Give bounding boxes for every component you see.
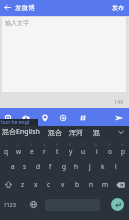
staticText: 混合English: [2, 127, 40, 137]
button[interactable]: More candidates: [115, 126, 127, 138]
staticText: 6: [69, 142, 72, 147]
staticText: 8: [95, 142, 98, 147]
staticText: 7: [82, 142, 85, 147]
staticText: m: [102, 180, 109, 189]
button[interactable]: b: [70, 176, 84, 193]
button[interactable]: 8: [90, 140, 103, 157]
staticText: g: [62, 162, 66, 171]
staticText: a: [11, 162, 15, 171]
button[interactable]: 5: [51, 140, 64, 157]
button[interactable]: 0: [116, 140, 129, 157]
button[interactable]: Backspace: [112, 176, 129, 193]
button[interactable]: 浑河: [68, 128, 84, 137]
staticText: u: [81, 147, 86, 156]
staticText: d: [36, 162, 40, 171]
staticText: 混: [93, 128, 100, 137]
staticText: x: [34, 180, 38, 189]
staticText: h: [74, 162, 79, 171]
button[interactable]: Topic: [76, 111, 89, 124]
button[interactable]: Emoji: [1, 111, 14, 124]
button[interactable]: d: [31, 158, 44, 175]
button[interactable]: m: [98, 176, 112, 193]
staticText: 发布: [112, 4, 124, 12]
button[interactable]: Location: [38, 111, 51, 124]
staticText: 1: [5, 142, 8, 147]
staticText: v: [61, 180, 65, 189]
staticText: y: [69, 147, 73, 156]
button[interactable]: Send: [112, 111, 125, 124]
staticText: 浑河: [69, 128, 83, 137]
button[interactable]: z: [16, 176, 29, 193]
button[interactable]: x: [29, 176, 42, 193]
staticText: b: [75, 180, 79, 189]
button[interactable]: v: [56, 176, 70, 193]
button[interactable]: Back: [0, 0, 15, 15]
staticText: i: [96, 147, 98, 156]
staticText: 2: [17, 142, 20, 147]
staticText: 输入文字: [5, 19, 29, 27]
button[interactable]: 4: [38, 140, 51, 157]
staticText: j: [89, 162, 91, 171]
staticText: c: [47, 180, 51, 189]
button[interactable]: h: [70, 158, 83, 175]
button[interactable]: s: [19, 158, 31, 175]
button[interactable]: 3: [25, 140, 38, 157]
staticText: 4: [43, 142, 46, 147]
button[interactable]: 9: [103, 140, 116, 157]
staticText: 9: [108, 142, 111, 147]
button[interactable]: j: [83, 158, 96, 175]
button[interactable]: 混: [92, 128, 101, 137]
button[interactable]: Enter: [106, 194, 129, 215]
staticText: q: [4, 147, 8, 156]
staticText: p: [121, 147, 125, 156]
staticText: f: [49, 162, 52, 171]
button[interactable]: 1: [0, 140, 12, 157]
button[interactable]: 混合English: [1, 127, 41, 137]
button[interactable]: Camera: [19, 111, 32, 124]
staticText: hun he engl: [1, 119, 30, 126]
staticText: 0: [121, 142, 124, 147]
staticText: k: [101, 162, 105, 171]
button[interactable]: l: [109, 158, 122, 175]
staticText: 混合: [48, 128, 62, 137]
staticText: o: [108, 147, 112, 156]
button[interactable]: c: [42, 176, 56, 193]
button[interactable]: n: [84, 176, 98, 193]
button[interactable]: f: [44, 158, 57, 175]
button[interactable]: 混合: [47, 128, 63, 137]
button[interactable]: 2: [12, 140, 25, 157]
button[interactable]: Change language: [26, 194, 41, 215]
button[interactable]: a: [7, 158, 19, 175]
button[interactable]: 7: [77, 140, 90, 157]
staticText: n: [89, 180, 94, 189]
staticText: 发微博: [15, 4, 35, 12]
button[interactable]: Mention: [56, 111, 69, 124]
button[interactable]: k: [96, 158, 109, 175]
button[interactable]: Shift: [0, 176, 16, 193]
button[interactable]: 6: [64, 140, 77, 157]
staticText: r: [43, 147, 46, 156]
button[interactable]: g: [57, 158, 70, 175]
staticText: 5: [56, 142, 59, 147]
staticText: 140: [114, 98, 124, 105]
staticText: t: [56, 147, 59, 156]
staticText: 3: [30, 142, 33, 147]
staticText: z: [21, 180, 25, 189]
button[interactable]: ?123: [0, 194, 19, 215]
staticText: l: [115, 162, 117, 171]
button[interactable]: 发布: [107, 4, 129, 12]
staticText: e: [30, 147, 34, 156]
staticText: ?123: [4, 201, 16, 208]
staticText: s: [23, 162, 27, 171]
staticText: w: [16, 147, 22, 156]
